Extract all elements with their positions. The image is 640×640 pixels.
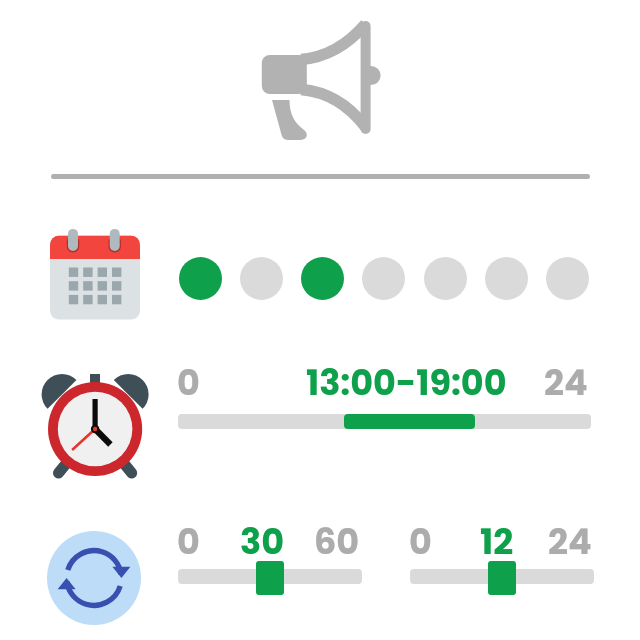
- staticText: 24: [544, 358, 588, 407]
- button[interactable]: Active hours: [178, 414, 591, 429]
- button[interactable]: Day 3: [301, 257, 344, 300]
- staticText: 0: [177, 517, 200, 566]
- staticText: 0: [177, 358, 200, 407]
- staticText: 12: [480, 517, 514, 566]
- button[interactable]: Slider 30: [177, 515, 363, 600]
- staticText: 24: [548, 517, 592, 566]
- button[interactable]: Day 6: [485, 257, 528, 300]
- button[interactable]: Day 5: [424, 257, 467, 300]
- button[interactable]: Announcements: [253, 13, 387, 147]
- button[interactable]: Slider 12: [409, 515, 595, 600]
- staticText: 0: [409, 517, 432, 566]
- staticText: 30: [240, 517, 284, 566]
- button[interactable]: Day 4: [362, 257, 405, 300]
- button[interactable]: Day 7: [546, 257, 589, 300]
- staticText: 60: [314, 517, 360, 566]
- button[interactable]: Day 2: [240, 257, 283, 300]
- staticText: 13:00-19:00: [306, 358, 507, 407]
- button[interactable]: Day 1: [179, 257, 222, 300]
